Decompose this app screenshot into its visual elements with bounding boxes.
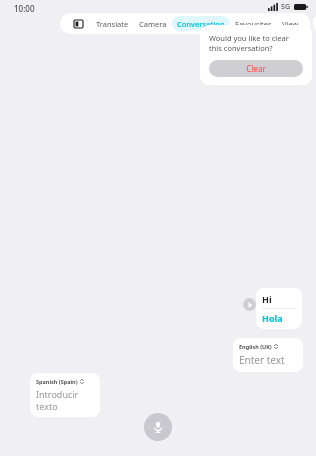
button[interactable]: Play translation [243, 298, 256, 311]
staticText: English (UK) [239, 343, 272, 350]
staticText: Conversation [177, 19, 225, 29]
button[interactable]: Camera [134, 16, 172, 31]
button[interactable]: Spanish (Spain) [30, 373, 100, 417]
staticText: 10:00 [14, 3, 35, 14]
staticText: Hola [262, 312, 283, 324]
button[interactable]: Translate [91, 16, 134, 31]
button[interactable]: Microphone [144, 413, 172, 441]
button[interactable]: Favourites [230, 16, 277, 31]
button[interactable]: Panel [69, 15, 87, 33]
staticText: Enter text [239, 353, 285, 367]
button[interactable]: English (UK) [233, 338, 303, 372]
button[interactable]: View [277, 16, 304, 31]
button[interactable]: Hi [256, 288, 302, 329]
staticText: Hi [262, 293, 272, 305]
staticText: Favourites [235, 19, 272, 29]
staticText: Would you like to clear this conversatio… [209, 33, 303, 53]
staticText: Introducir texto [36, 388, 94, 412]
staticText: Spanish (Spain) [36, 378, 78, 385]
staticText: Translate [96, 19, 129, 29]
staticText: Clear [246, 63, 266, 74]
staticText: View [282, 19, 299, 29]
staticText: Camera [139, 19, 167, 29]
button[interactable]: Clear [209, 60, 303, 77]
staticText: 5G [281, 2, 291, 12]
button[interactable]: More options [313, 13, 316, 34]
button[interactable]: Conversation [172, 16, 230, 31]
